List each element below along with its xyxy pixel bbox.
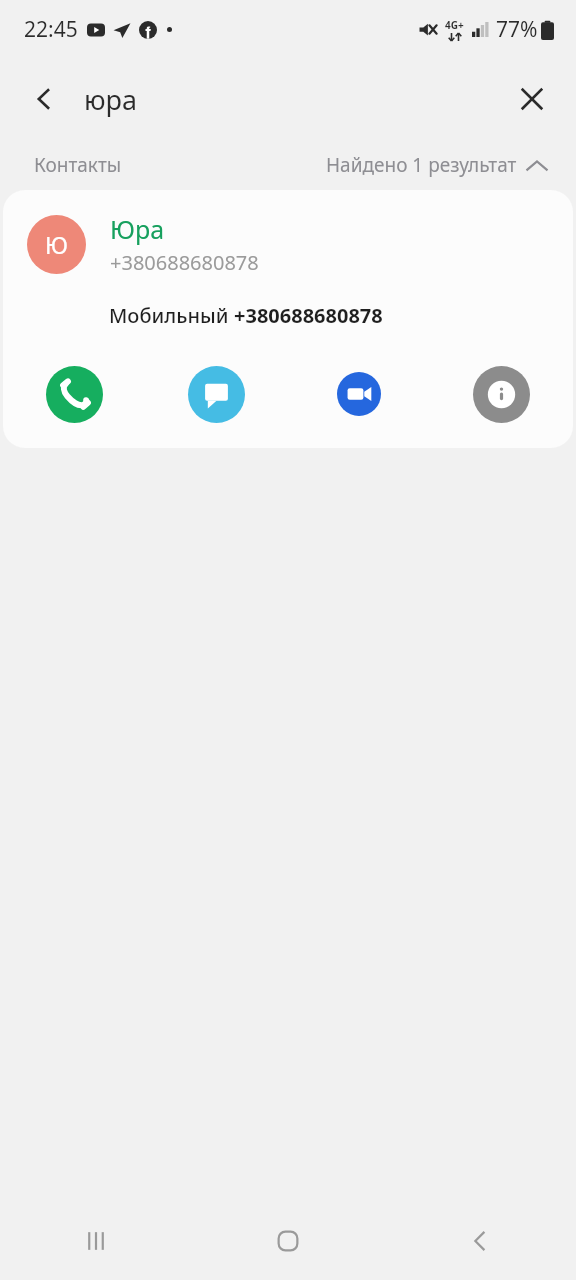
staticText: +380688680878 [110, 249, 259, 276]
button[interactable]: Найдено 1 результат [320, 148, 554, 182]
staticText: +380688680878 [234, 302, 383, 329]
staticText: 4G+ [445, 18, 464, 32]
button[interactable]: Video call [287, 358, 430, 430]
staticText: Ю [45, 229, 68, 260]
staticText: Юра [110, 212, 165, 246]
button[interactable]: Back [14, 69, 74, 129]
button[interactable]: Clear search [502, 69, 562, 129]
button[interactable]: Recents [0, 1202, 192, 1280]
staticText: 77% [496, 15, 538, 44]
button[interactable]: Contact info [430, 358, 573, 430]
button[interactable]: Ю [3, 208, 573, 280]
staticText: Мобильный [109, 302, 234, 329]
button[interactable]: Call [3, 358, 145, 430]
button[interactable]: Back [384, 1202, 576, 1280]
button[interactable]: Message [145, 358, 287, 430]
staticText: 22:45 [24, 15, 78, 44]
staticText: Найдено 1 результат [326, 152, 517, 178]
staticText: юра [84, 81, 138, 118]
staticText: Контакты [34, 152, 122, 178]
button[interactable]: Home [192, 1202, 384, 1280]
